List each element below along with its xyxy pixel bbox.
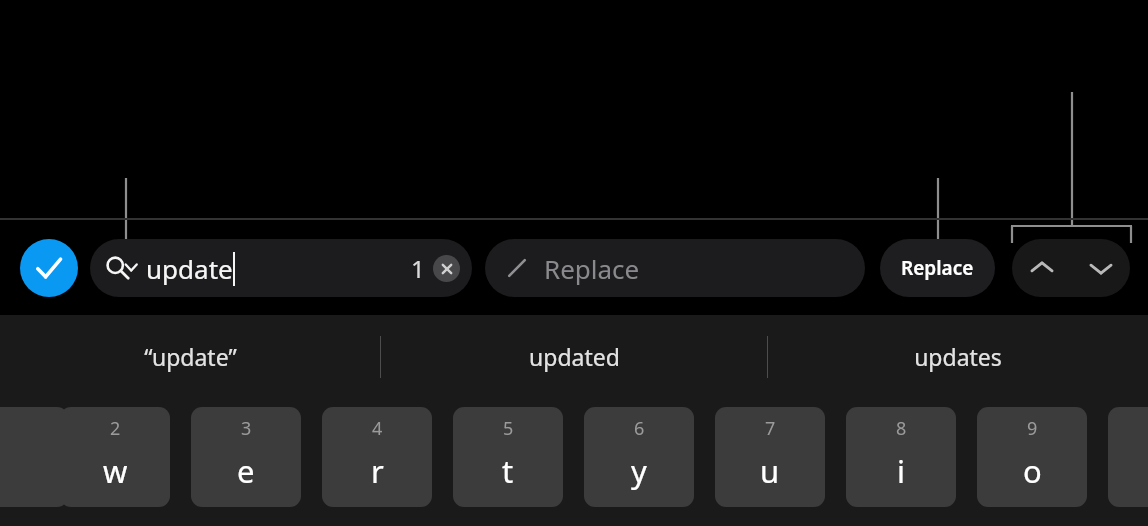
staticText: o — [1023, 450, 1042, 492]
button[interactable]: 7 — [715, 407, 825, 507]
staticText: 3 — [241, 416, 252, 441]
staticText: u — [760, 450, 780, 492]
button[interactable] — [1108, 407, 1148, 507]
button[interactable]: 8 — [846, 407, 956, 507]
staticText: 9 — [1027, 416, 1038, 441]
staticText: 8 — [896, 416, 907, 441]
staticText: y — [631, 450, 647, 492]
staticText: i — [897, 450, 905, 492]
staticText: “update” — [144, 341, 237, 372]
staticText: 4 — [372, 416, 383, 441]
staticText: updates — [914, 341, 1002, 372]
staticText: 6 — [634, 416, 645, 441]
staticText: 5 — [503, 416, 514, 441]
button[interactable]: Clear search — [433, 255, 460, 282]
staticText: 7 — [765, 416, 776, 441]
button[interactable]: 3 — [191, 407, 301, 507]
button[interactable]: 6 — [584, 407, 694, 507]
button[interactable]: Edit replacement — [485, 239, 865, 297]
button[interactable]: Search options — [90, 239, 472, 297]
button[interactable]: Next match — [1071, 239, 1130, 297]
button[interactable]: 9 — [977, 407, 1087, 507]
button[interactable]: updated — [381, 315, 767, 398]
button[interactable]: 4 — [322, 407, 432, 507]
staticText: updated — [529, 341, 620, 372]
other: Edit replacement — [504, 255, 530, 281]
staticText: 2 — [110, 416, 121, 441]
other: Search options — [104, 251, 138, 285]
staticText: 1 — [411, 252, 425, 285]
staticText: e — [237, 450, 255, 492]
staticText: update — [146, 251, 233, 286]
button[interactable]: “update” — [0, 315, 380, 398]
staticText: Replace — [544, 251, 640, 286]
button[interactable]: Done — [20, 239, 78, 297]
staticText: Replace — [901, 255, 974, 281]
button[interactable]: 5 — [453, 407, 563, 507]
button[interactable]: updates — [768, 315, 1148, 398]
button[interactable]: 2 — [60, 407, 170, 507]
staticText: w — [103, 450, 128, 492]
button[interactable]: Replace — [880, 239, 995, 297]
staticText: t — [502, 450, 514, 492]
staticText: r — [371, 450, 384, 492]
button[interactable]: Previous match — [1012, 239, 1071, 297]
